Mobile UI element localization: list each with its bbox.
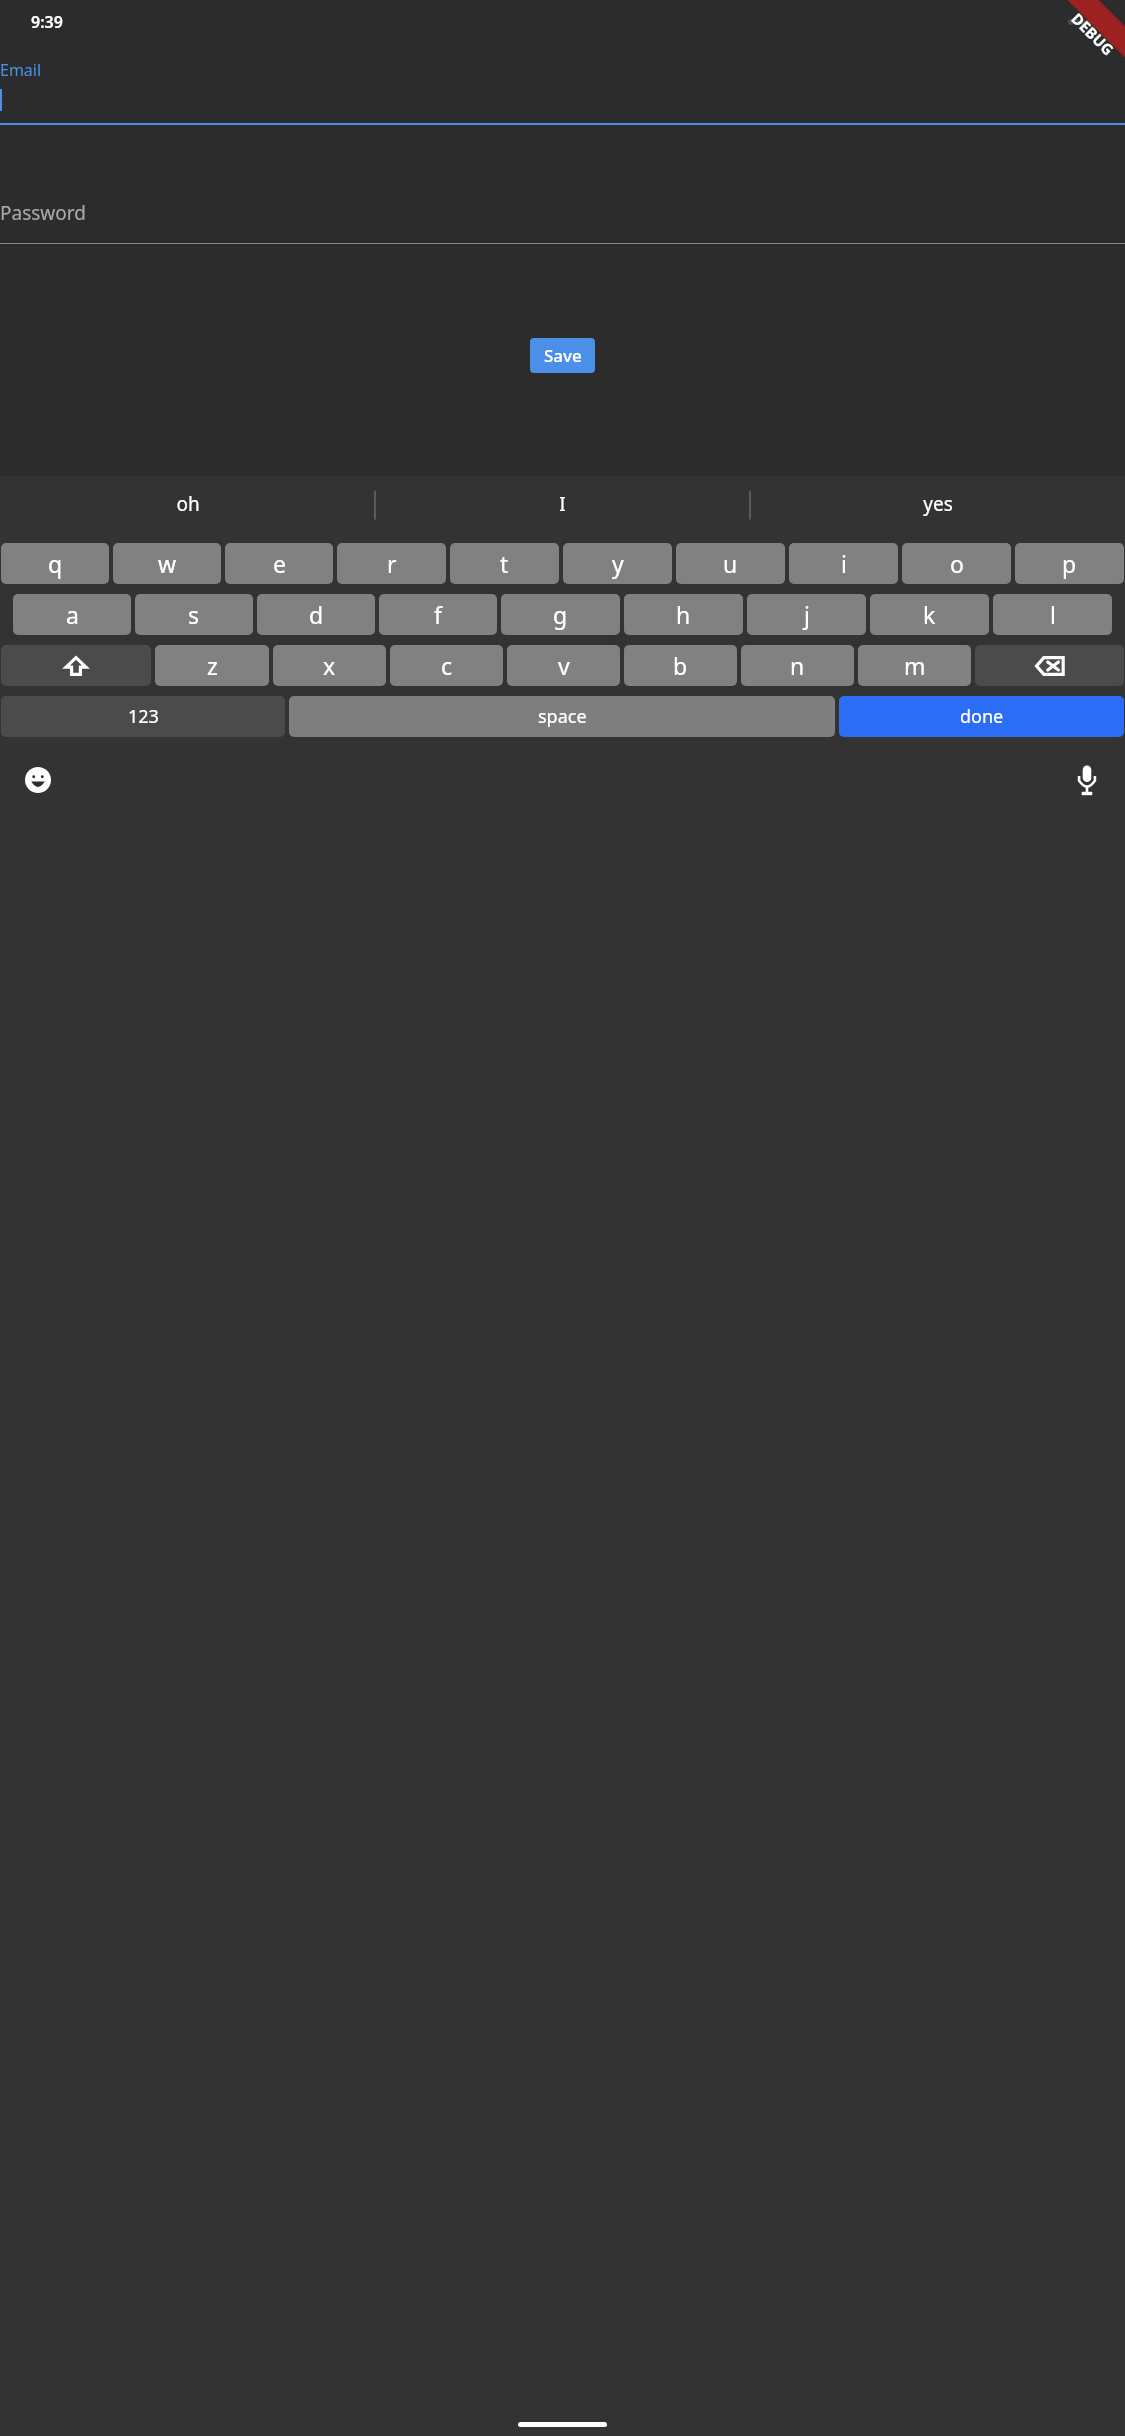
button[interactable]: s <box>135 594 253 635</box>
staticText: h <box>676 599 691 630</box>
staticText: Save <box>544 344 582 367</box>
staticText: oh <box>176 491 200 517</box>
button[interactable]: e <box>225 543 333 584</box>
staticText: t <box>500 548 509 579</box>
staticText: space <box>538 704 587 729</box>
button[interactable]: y <box>563 543 672 584</box>
button[interactable]: z <box>155 645 269 686</box>
button[interactable]: m <box>858 645 971 686</box>
button[interactable]: i <box>789 543 898 584</box>
staticText: j <box>804 599 810 630</box>
staticText: n <box>790 650 805 681</box>
staticText: e <box>273 548 286 579</box>
button[interactable]: w <box>113 543 221 584</box>
button[interactable]: 123 <box>1 696 285 737</box>
staticText: k <box>923 599 936 630</box>
staticText: b <box>673 650 688 681</box>
button[interactable]: Shift <box>1 645 151 686</box>
staticText: l <box>1050 599 1056 630</box>
button[interactable]: Backspace <box>975 645 1124 686</box>
staticText: Email <box>0 59 42 81</box>
staticText: yes <box>923 491 953 517</box>
staticText: a <box>66 599 79 630</box>
button[interactable]: done <box>839 696 1124 737</box>
button[interactable]: n <box>741 645 854 686</box>
staticText: y <box>612 548 624 579</box>
staticText: g <box>553 599 568 630</box>
button[interactable]: space <box>289 696 835 737</box>
button[interactable]: c <box>390 645 503 686</box>
button[interactable]: yes <box>750 476 1125 531</box>
staticText: w <box>158 548 177 579</box>
staticText: Password <box>0 200 86 226</box>
staticText: o <box>950 548 964 579</box>
staticText: done <box>960 704 1004 729</box>
button[interactable]: I <box>375 476 750 531</box>
button[interactable]: Emoji <box>15 757 61 803</box>
staticText: c <box>441 650 453 681</box>
button[interactable]: Voice input <box>1064 757 1110 803</box>
button[interactable]: l <box>993 594 1112 635</box>
button[interactable]: f <box>379 594 497 635</box>
button[interactable]: Password <box>0 200 1125 244</box>
button[interactable]: Email <box>0 59 1125 125</box>
button[interactable]: t <box>450 543 559 584</box>
staticText: v <box>558 650 570 681</box>
staticText: 9:39 <box>31 11 63 33</box>
staticText: i <box>841 548 847 579</box>
button[interactable]: b <box>624 645 737 686</box>
button[interactable]: r <box>337 543 446 584</box>
button[interactable]: h <box>624 594 743 635</box>
button[interactable]: v <box>507 645 620 686</box>
staticText: u <box>723 548 738 579</box>
button[interactable]: j <box>747 594 866 635</box>
button[interactable]: g <box>501 594 620 635</box>
staticText: I <box>559 491 566 517</box>
button[interactable]: d <box>257 594 375 635</box>
button[interactable]: k <box>870 594 989 635</box>
staticText: p <box>1062 548 1077 579</box>
staticText: s <box>188 599 200 630</box>
staticText: z <box>207 650 218 681</box>
staticText: d <box>309 599 324 630</box>
button[interactable]: oh <box>0 476 375 531</box>
staticText: q <box>48 548 63 579</box>
staticText: m <box>904 650 926 681</box>
staticText: 123 <box>128 704 159 729</box>
button[interactable]: x <box>273 645 386 686</box>
button[interactable]: u <box>676 543 785 584</box>
staticText: x <box>323 650 336 681</box>
staticText: r <box>387 548 397 579</box>
button[interactable]: Save <box>530 338 595 373</box>
button[interactable]: a <box>13 594 131 635</box>
button[interactable]: p <box>1015 543 1124 584</box>
staticText: DEBUG <box>1067 8 1118 59</box>
staticText: f <box>434 599 442 630</box>
button[interactable]: q <box>1 543 109 584</box>
button[interactable]: o <box>902 543 1011 584</box>
